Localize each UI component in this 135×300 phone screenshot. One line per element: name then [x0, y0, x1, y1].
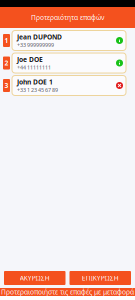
button[interactable]: 3	[0, 75, 135, 95]
staticText: +33 1 23 45 67 89	[17, 86, 58, 93]
button[interactable]: ΑΚΥΡΩΣΗ	[4, 271, 65, 285]
staticText: John DOE 1	[17, 77, 53, 86]
staticText: +44 11111111	[17, 64, 51, 71]
button[interactable]: ΕΠΙΚΥΡΩΣΗ	[69, 271, 131, 285]
staticText: +33 999999999	[17, 41, 54, 48]
staticText: ΑΚΥΡΩΣΗ	[20, 274, 50, 282]
staticText: ΕΠΙΚΥΡΩΣΗ	[82, 274, 119, 282]
staticText: 1	[4, 36, 8, 45]
staticText: 3	[4, 81, 8, 90]
staticText: Jean DUPOND	[17, 32, 62, 41]
button[interactable]: 2	[0, 53, 135, 73]
staticText: 2	[4, 59, 8, 67]
staticText: Joe DOE	[17, 55, 43, 64]
staticText: Προτεραιοποιήστε τις επαφές με μεταφορά	[1, 288, 134, 296]
button[interactable]: 1	[0, 30, 135, 50]
staticText: Προτεραιότητα επαφών	[31, 13, 104, 22]
